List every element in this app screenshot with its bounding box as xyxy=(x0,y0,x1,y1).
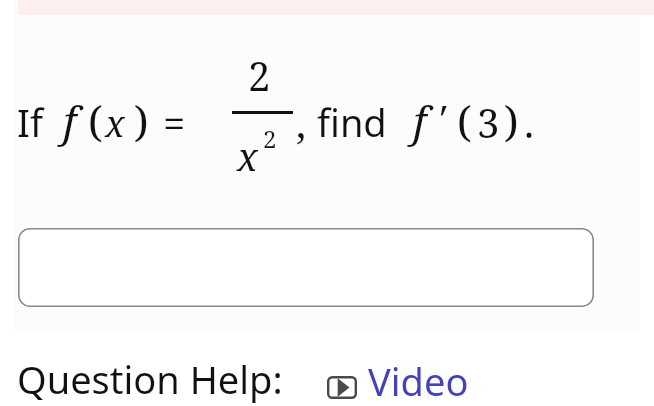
staticText: If xyxy=(17,96,43,148)
staticText: 2 xyxy=(248,48,271,102)
staticText: Question Help: xyxy=(17,353,283,405)
staticText: = xyxy=(163,95,186,149)
staticText: , xyxy=(296,95,306,149)
staticText: ( xyxy=(88,92,103,149)
button[interactable] xyxy=(18,228,594,307)
staticText: find xyxy=(317,96,387,148)
staticText: x xyxy=(237,130,258,182)
staticText: x xyxy=(105,99,125,148)
button[interactable]: Play help video xyxy=(327,355,469,406)
staticText: ) xyxy=(134,92,149,149)
staticText: 3 xyxy=(477,95,500,149)
staticText: ) xyxy=(504,92,519,149)
staticText: . xyxy=(524,95,534,149)
staticText: f xyxy=(413,92,427,149)
staticText: f xyxy=(63,92,77,149)
staticText: Video xyxy=(368,355,469,406)
staticText: ( xyxy=(457,92,472,149)
staticText: ′ xyxy=(440,92,448,146)
staticText: 2 xyxy=(263,122,277,155)
